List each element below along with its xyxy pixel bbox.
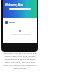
staticText: Members can do it all from one place: se… bbox=[3, 52, 37, 70]
button[interactable]: Search bbox=[9, 8, 31, 10]
button[interactable]: App bbox=[5, 21, 8, 24]
staticText: Welcome, Alex bbox=[5, 3, 24, 7]
